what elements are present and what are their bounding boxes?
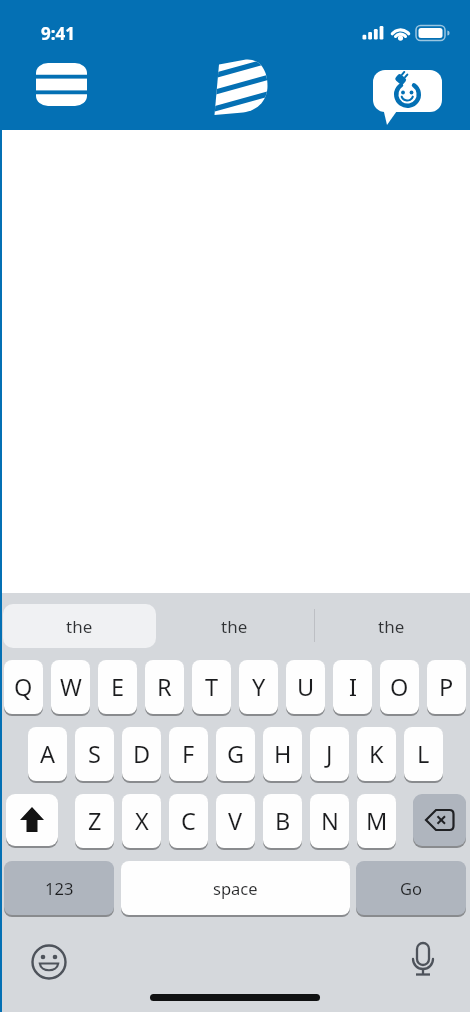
staticText: K — [369, 738, 384, 770]
button[interactable]: C — [169, 794, 208, 848]
staticText: E — [111, 671, 125, 703]
button[interactable]: H — [263, 727, 302, 781]
staticText: the — [221, 615, 248, 638]
staticText: Z — [88, 805, 102, 837]
staticText: F — [182, 738, 195, 770]
button[interactable]: O — [380, 660, 419, 714]
staticText: H — [274, 738, 292, 770]
button[interactable]: F — [169, 727, 208, 781]
staticText: P — [439, 671, 454, 703]
button[interactable] — [413, 794, 466, 846]
button[interactable]: space — [121, 861, 350, 915]
button[interactable]: U — [286, 660, 325, 714]
button[interactable]: R — [145, 660, 184, 714]
staticText: J — [326, 738, 333, 770]
staticText: Q — [14, 671, 33, 703]
staticText: G — [227, 738, 245, 770]
button[interactable]: the — [315, 604, 467, 648]
button[interactable]: J — [310, 727, 349, 781]
button[interactable]: K — [357, 727, 396, 781]
staticText: O — [390, 671, 409, 703]
button[interactable]: Z — [75, 794, 114, 848]
button[interactable]: X — [122, 794, 161, 848]
staticText: D — [133, 738, 151, 770]
staticText: L — [417, 738, 430, 770]
button[interactable]: N — [310, 794, 349, 848]
button[interactable]: E — [98, 660, 137, 714]
staticText: B — [275, 805, 291, 837]
button[interactable]: the — [3, 604, 156, 648]
button[interactable]: T — [192, 660, 231, 714]
staticText: S — [88, 738, 101, 770]
staticText: W — [60, 671, 82, 703]
staticText: 9:41 — [41, 22, 75, 45]
button[interactable]: G — [216, 727, 255, 781]
staticText: Y — [252, 671, 266, 703]
staticText: space — [213, 877, 258, 899]
button[interactable] — [404, 941, 442, 983]
button[interactable] — [6, 794, 58, 846]
staticText: U — [297, 671, 315, 703]
staticText: T — [205, 671, 219, 703]
button[interactable]: the — [156, 604, 313, 648]
button[interactable]: P — [427, 660, 466, 714]
button[interactable] — [36, 63, 87, 106]
button[interactable]: 123 — [4, 861, 114, 915]
button[interactable]: D — [122, 727, 161, 781]
button[interactable]: V — [216, 794, 255, 848]
staticText: N — [321, 805, 339, 837]
button[interactable]: W — [51, 660, 90, 714]
button[interactable]: L — [404, 727, 443, 781]
staticText: I — [349, 671, 357, 703]
staticText: the — [378, 615, 405, 638]
staticText: 123 — [45, 877, 74, 899]
button[interactable]: Q — [4, 660, 43, 714]
button[interactable]: B — [263, 794, 302, 848]
button[interactable]: S — [75, 727, 114, 781]
button[interactable] — [205, 52, 275, 122]
button[interactable]: I — [333, 660, 372, 714]
staticText: the — [66, 615, 93, 638]
staticText: Go — [400, 877, 422, 899]
staticText: V — [228, 805, 243, 837]
button[interactable]: Y — [239, 660, 278, 714]
button[interactable] — [370, 66, 450, 128]
staticText: X — [135, 805, 149, 837]
button[interactable]: Go — [356, 861, 466, 915]
button[interactable] — [28, 941, 70, 983]
button[interactable]: M — [357, 794, 396, 848]
staticText: R — [157, 671, 172, 703]
staticText: C — [181, 805, 196, 837]
staticText: A — [40, 738, 56, 770]
button[interactable]: A — [28, 727, 67, 781]
staticText: M — [366, 805, 388, 837]
